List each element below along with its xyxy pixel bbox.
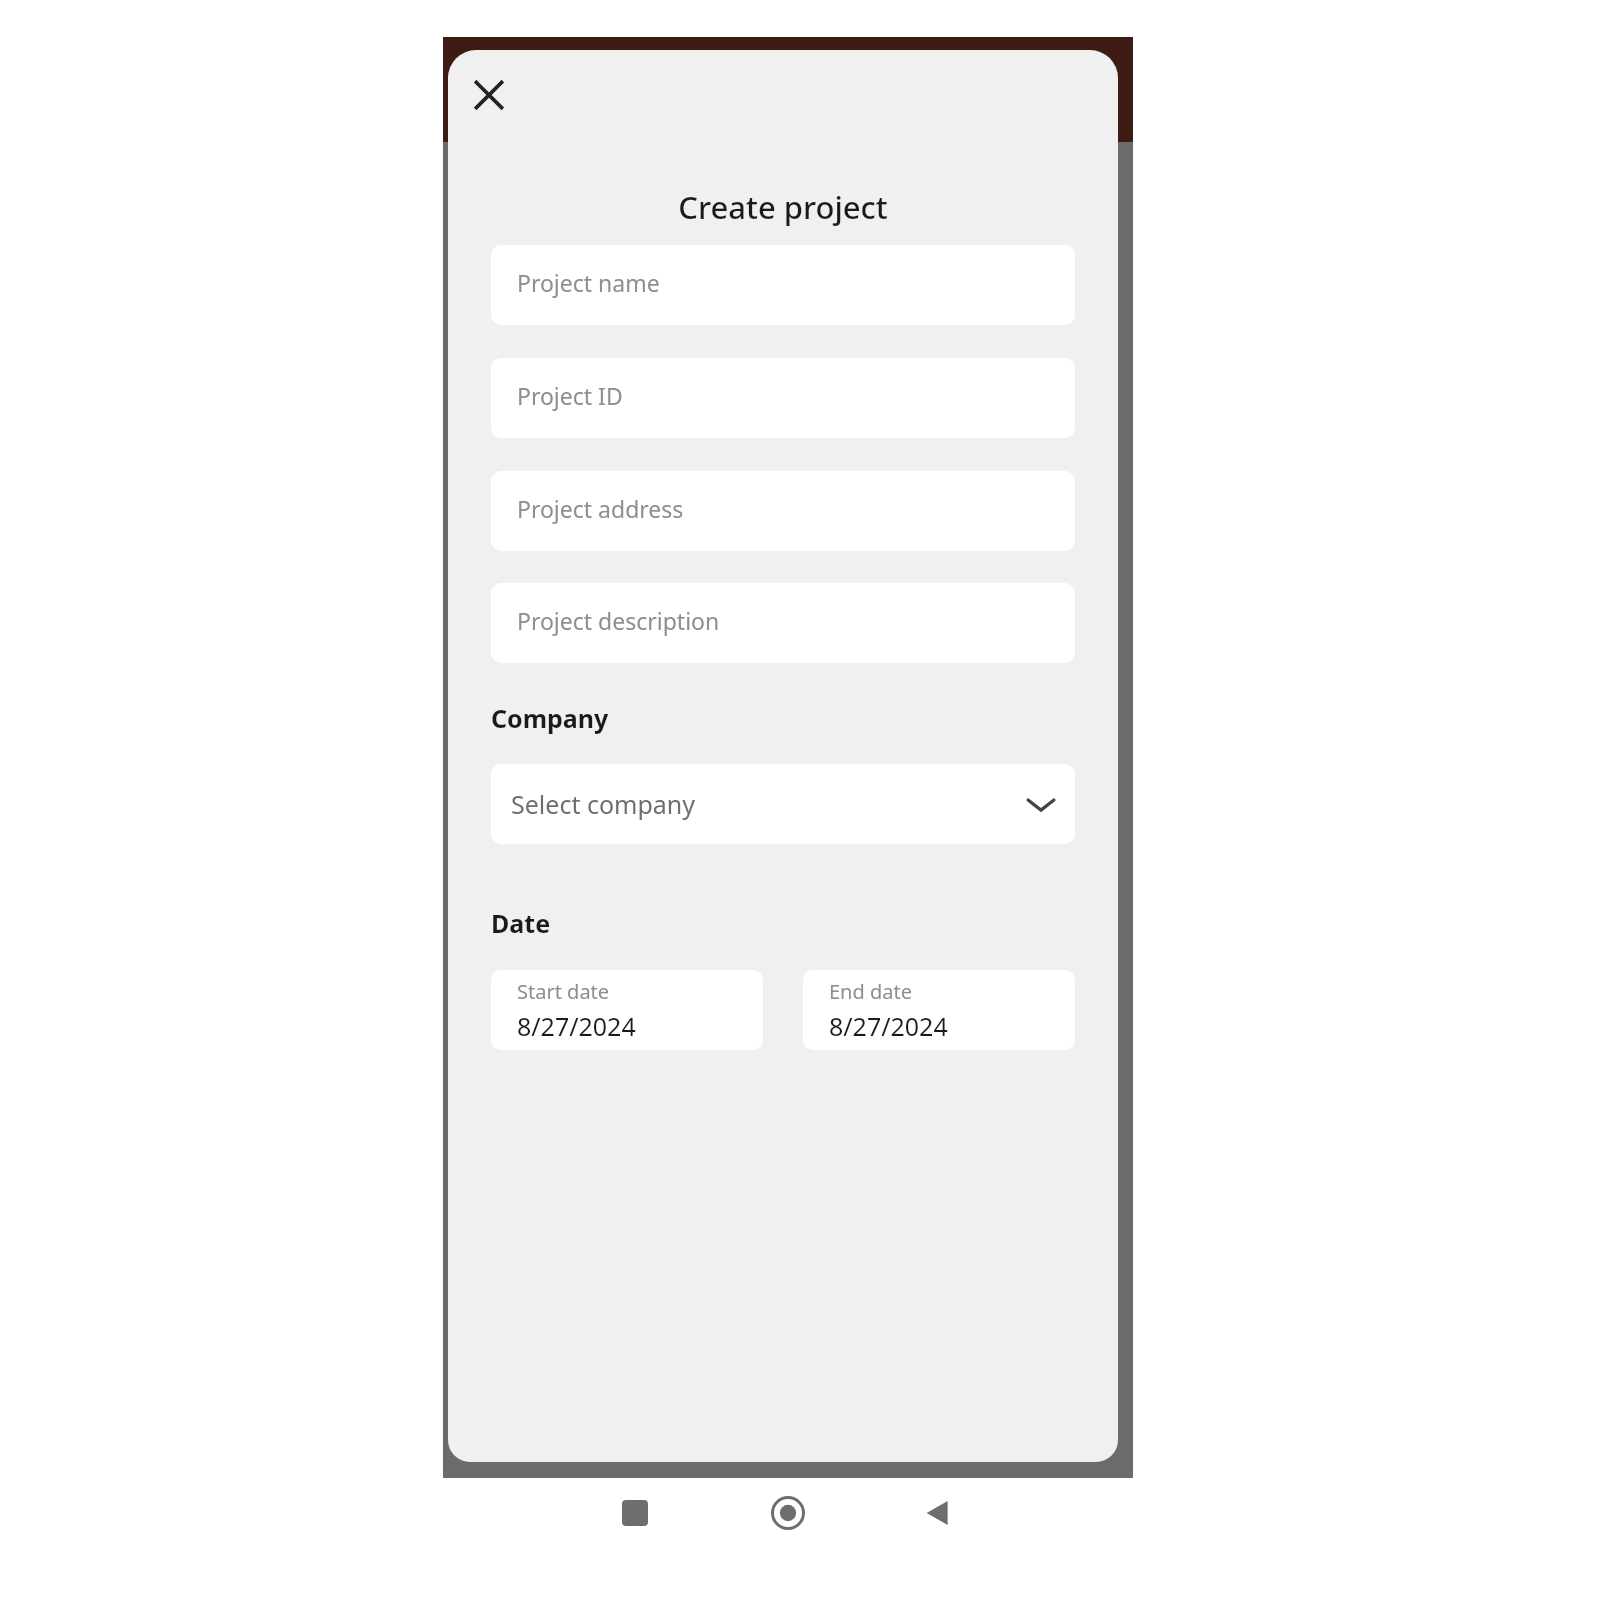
staticText: Date — [491, 906, 551, 940]
button[interactable]: Recent apps — [611, 1489, 659, 1537]
button[interactable]: Project description — [491, 583, 1075, 663]
staticText: 8/27/2024 — [517, 1009, 636, 1043]
button[interactable]: Project name — [491, 245, 1075, 325]
staticText: Company — [491, 701, 609, 735]
button[interactable]: Project ID — [491, 358, 1075, 438]
button[interactable]: Close — [469, 75, 509, 115]
button[interactable]: Select company — [491, 764, 1075, 844]
staticText: Project name — [517, 267, 660, 298]
staticText: Select company — [511, 787, 696, 821]
button[interactable]: Back — [914, 1489, 962, 1537]
button[interactable]: Start date — [491, 970, 763, 1050]
button[interactable]: End date — [803, 970, 1075, 1050]
staticText: 8/27/2024 — [829, 1009, 948, 1043]
button[interactable]: Project address — [491, 471, 1075, 551]
staticText: Project ID — [517, 380, 623, 411]
button[interactable]: Home — [764, 1489, 812, 1537]
staticText: End date — [829, 978, 912, 1005]
staticText: Start date — [517, 978, 610, 1005]
staticText: Project description — [517, 605, 720, 636]
staticText: Create project — [448, 186, 1118, 228]
staticText: Project address — [517, 493, 684, 524]
